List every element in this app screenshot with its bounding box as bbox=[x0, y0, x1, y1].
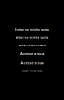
staticText: Acesse a sua bbox=[20, 60, 43, 65]
staticText: Entrar na minha conta bbox=[18, 43, 45, 47]
staticText: Esqueci minha senha bbox=[22, 69, 42, 72]
staticText: Entrar na minha conta bbox=[15, 36, 48, 39]
staticText: Acesse a sua bbox=[20, 51, 44, 56]
staticText: Entrar na minha conta bbox=[15, 28, 49, 32]
